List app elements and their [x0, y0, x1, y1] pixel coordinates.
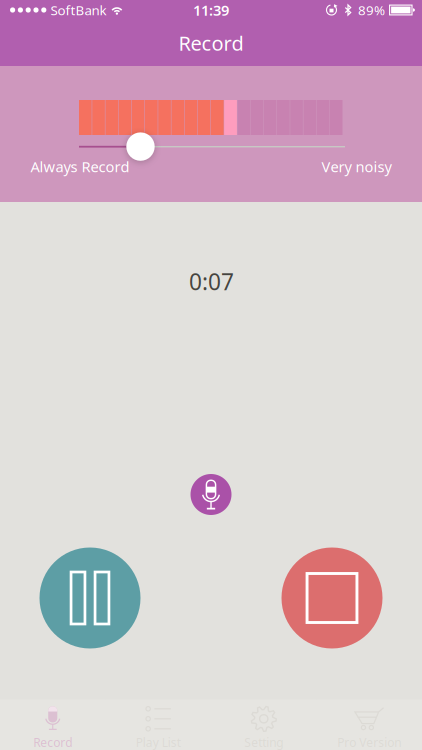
staticText: SoftBank [50, 1, 106, 19]
staticText: Play List [136, 734, 181, 750]
staticText: Setting [244, 734, 283, 750]
staticText: Record [178, 30, 243, 56]
button[interactable]: Input level [190, 474, 231, 515]
button[interactable]: Pause [39, 547, 140, 648]
staticText: Pro Version [337, 734, 401, 750]
button[interactable]: Stop [281, 547, 382, 648]
staticText: Record [33, 734, 72, 750]
staticText: 89% [358, 1, 385, 19]
staticText: Very noisy [321, 157, 391, 176]
staticText: 0:07 [189, 266, 234, 296]
staticText: Always Record [30, 157, 129, 176]
button[interactable]: Record [0, 699, 105, 750]
staticText: 11:39 [193, 0, 229, 20]
